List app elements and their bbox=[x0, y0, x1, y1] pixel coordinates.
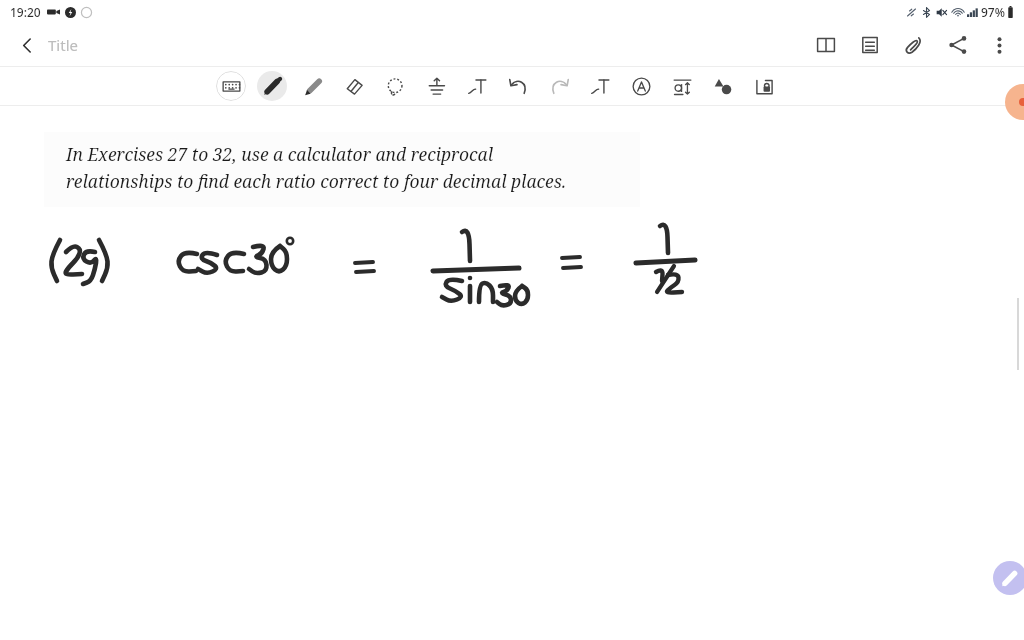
button[interactable]: Title bbox=[48, 35, 78, 55]
button[interactable]: Undo bbox=[503, 71, 533, 101]
staticText: In Exercises 27 to 32, use a calculator … bbox=[66, 142, 567, 193]
button[interactable]: Align bbox=[421, 71, 451, 101]
button[interactable]: Share bbox=[942, 29, 974, 61]
button[interactable]: Handwriting to text bbox=[462, 71, 492, 101]
button[interactable]: Eraser bbox=[339, 71, 369, 101]
button[interactable]: Reading view bbox=[810, 29, 842, 61]
button[interactable]: Pen bbox=[257, 71, 287, 101]
button[interactable]: Edit with pen bbox=[993, 561, 1024, 595]
button[interactable]: Text size bbox=[667, 71, 697, 101]
button[interactable]: Shapes bbox=[708, 71, 738, 101]
button[interactable]: Font bbox=[626, 71, 656, 101]
button[interactable]: Redo bbox=[544, 71, 574, 101]
button[interactable]: Lasso select bbox=[380, 71, 410, 101]
staticText: 19:20 bbox=[10, 4, 41, 20]
button[interactable]: Insert text bbox=[585, 71, 615, 101]
staticText: 97% bbox=[981, 4, 1005, 20]
button[interactable]: Notes bbox=[854, 29, 886, 61]
button[interactable]: Lock canvas bbox=[749, 71, 779, 101]
button[interactable]: Attach bbox=[898, 29, 930, 61]
button[interactable]: More options bbox=[984, 30, 1014, 60]
button[interactable]: Keyboard bbox=[216, 71, 246, 101]
button[interactable]: Highlighter bbox=[298, 71, 328, 101]
button[interactable]: Back bbox=[12, 30, 42, 60]
